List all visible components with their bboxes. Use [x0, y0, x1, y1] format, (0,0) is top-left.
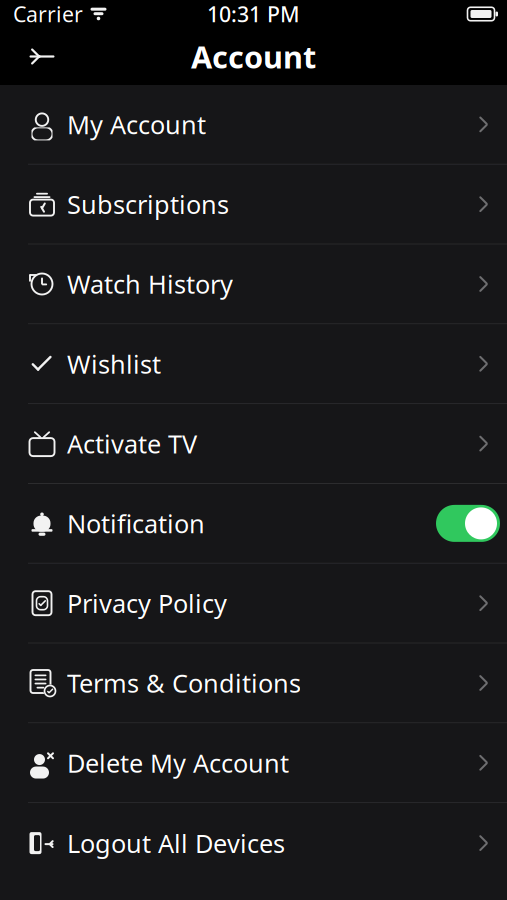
staticText: 10:31 PM [207, 0, 300, 28]
button[interactable]: My Account [0, 85, 507, 165]
staticText: Account [191, 36, 316, 77]
button[interactable]: Terms & Conditions [0, 644, 507, 723]
button[interactable]: Subscriptions [0, 165, 507, 245]
button[interactable]: Watch History [0, 245, 507, 324]
button[interactable]: Privacy Policy [0, 564, 507, 644]
staticText: Subscriptions [67, 187, 229, 221]
button[interactable]: Notification toggle [436, 505, 500, 542]
staticText: Privacy Policy [67, 586, 227, 620]
button[interactable]: Logout All Devices [0, 803, 507, 883]
staticText: Delete My Account [67, 746, 289, 780]
staticText: Carrier [13, 0, 83, 28]
button[interactable]: Wishlist [0, 324, 507, 404]
staticText: Watch History [67, 267, 233, 301]
staticText: Notification [67, 507, 205, 540]
staticText: Logout All Devices [67, 826, 285, 860]
button[interactable]: Delete My Account [0, 723, 507, 803]
staticText: Activate TV [67, 427, 197, 460]
staticText: Terms & Conditions [67, 666, 301, 700]
staticText: Wishlist [67, 347, 161, 381]
staticText: My Account [67, 108, 206, 141]
button[interactable]: Back [18, 34, 66, 78]
button[interactable]: Activate TV [0, 404, 507, 484]
